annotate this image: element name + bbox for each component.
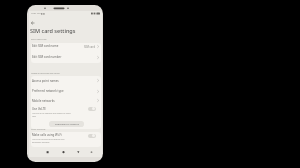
button[interactable] <box>88 107 96 111</box>
button[interactable] <box>31 132 101 147</box>
staticText: Use Wi-Fi to place and receive calls <box>32 138 65 141</box>
staticText: SIM CARD INFO <box>31 38 47 41</box>
button[interactable] <box>31 85 101 95</box>
button[interactable] <box>29 149 102 157</box>
staticText: Preferred network type <box>32 89 64 93</box>
staticText: calls <box>32 115 37 118</box>
staticText: whenever possible <box>32 141 50 144</box>
staticText: Use VoLTE <box>32 107 46 111</box>
staticText: Access point names <box>32 79 59 83</box>
button[interactable] <box>31 76 101 86</box>
button[interactable] <box>88 134 96 138</box>
staticText: Make calls using Wi-Fi <box>32 133 62 137</box>
staticText: SIM card settings <box>30 27 76 34</box>
staticText: WI-FI CALLING <box>31 128 46 131</box>
staticText: Registered to network <box>55 123 79 126</box>
staticText: Edit SIM card number <box>32 55 62 59</box>
staticText: Use VoLTE to improve the quality of voic… <box>32 112 71 115</box>
staticText: 12:01 PM <box>31 12 41 15</box>
button[interactable] <box>31 43 101 53</box>
button[interactable] <box>31 95 101 105</box>
staticText: Mobile networks <box>32 99 55 103</box>
button[interactable] <box>31 53 101 63</box>
button[interactable]: Registered to network <box>49 121 84 127</box>
staticText: Edit SIM card name <box>32 44 59 48</box>
button[interactable] <box>31 21 35 25</box>
staticText: MOBILE NETWORK SETTINGS <box>31 72 60 75</box>
staticText: SIM card <box>84 45 96 49</box>
